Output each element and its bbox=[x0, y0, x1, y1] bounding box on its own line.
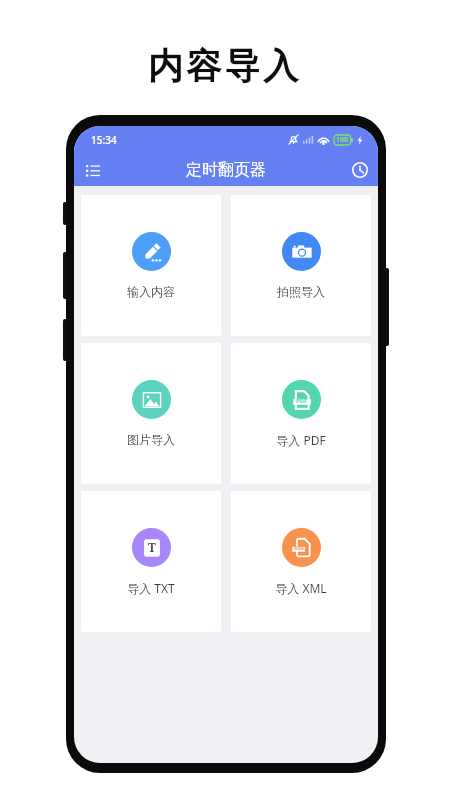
staticText: 15:34 bbox=[91, 133, 117, 147]
staticText: 输入内容 bbox=[127, 284, 175, 299]
button[interactable]: XML bbox=[231, 491, 371, 632]
staticText: 导入 TXT bbox=[127, 580, 175, 596]
staticText: 图片导入 bbox=[127, 432, 175, 447]
staticText: PDF bbox=[296, 397, 308, 405]
button[interactable]: 输入内容 bbox=[81, 195, 221, 336]
staticText: 导入 PDF bbox=[276, 432, 326, 448]
button[interactable]: History bbox=[344, 154, 375, 185]
button[interactable]: Menu bbox=[77, 154, 108, 185]
staticText: XML bbox=[294, 545, 305, 552]
staticText: T bbox=[148, 539, 156, 555]
button[interactable]: 图片导入 bbox=[81, 343, 221, 484]
staticText: 内容导入 bbox=[148, 44, 302, 88]
button[interactable]: T bbox=[81, 491, 221, 632]
staticText: 100 bbox=[336, 135, 349, 145]
staticText: 拍照导入 bbox=[277, 284, 325, 299]
staticText: 导入 XML bbox=[275, 580, 327, 596]
button[interactable]: 拍照导入 bbox=[231, 195, 371, 336]
button[interactable]: PDF bbox=[231, 343, 371, 484]
staticText: 定时翻页器 bbox=[186, 160, 266, 180]
